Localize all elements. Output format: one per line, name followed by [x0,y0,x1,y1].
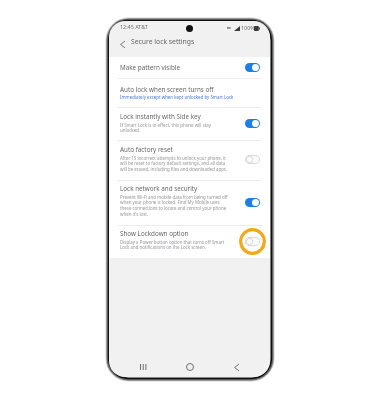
staticText: Make pattern visible [120,63,180,72]
button[interactable]: Turn on [245,155,260,164]
button[interactable] [109,107,270,140]
button[interactable]: Recent apps [134,358,152,376]
staticText: Show Lockdown option [120,229,189,238]
staticText: Auto factory reset [120,145,173,154]
staticText: Prevent Wi-Fi and mobile data from being… [120,194,228,218]
button[interactable]: Turn off [245,119,260,128]
button[interactable] [109,78,270,106]
staticText: Secure lock settings [131,37,195,46]
staticText: If Smart Lock is in effect, this phone w… [120,122,212,134]
button[interactable]: Turn on [245,237,260,246]
button[interactable]: Home [181,358,199,376]
staticText: Lock network and security [120,184,198,193]
staticText: Lock instantly with Side key [120,112,201,121]
button[interactable] [109,180,270,225]
staticText: After 15 incorrect attempts to unlock yo… [120,155,228,173]
button[interactable]: Turn off [245,198,260,207]
staticText: 100% [241,24,255,31]
button[interactable] [109,225,270,258]
button[interactable]: Back [115,37,129,51]
staticText: Auto lock when screen turns off [120,85,214,94]
staticText: Immediately except when kept unlocked by… [120,94,234,100]
button[interactable] [109,57,270,78]
staticText: Display a Power button option that turns… [120,239,225,251]
button[interactable] [109,140,270,180]
button[interactable]: Turn off [245,63,260,72]
staticText: 12:45 AT&T [120,23,148,30]
button[interactable]: Back [227,358,245,376]
